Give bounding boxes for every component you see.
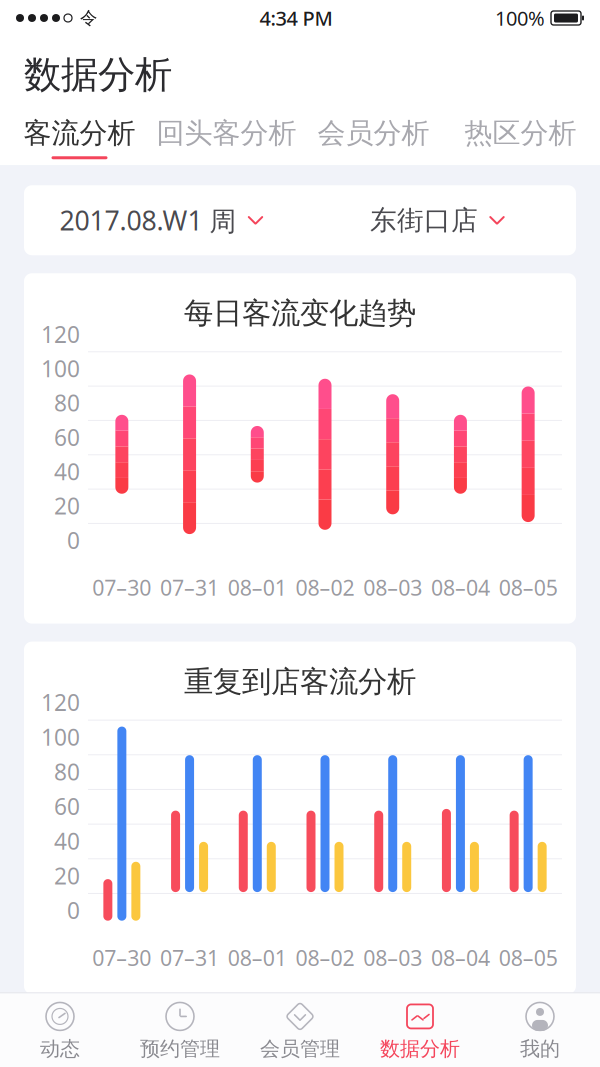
button[interactable]: 回头客分析 (153, 112, 300, 163)
staticText: 重复到店客流分析 (184, 664, 416, 700)
staticText: 120 (41, 687, 80, 717)
staticText: 预约管理 (140, 1036, 220, 1061)
staticText: 08–04 (431, 573, 490, 602)
button[interactable]: 数据分析 (360, 993, 480, 1067)
staticText: 08–03 (363, 573, 422, 602)
staticText: 会员管理 (260, 1036, 340, 1061)
staticText: 07–30 (92, 573, 151, 602)
staticText: 令 (80, 7, 97, 29)
staticText: 08–02 (295, 573, 354, 602)
staticText: 07–31 (160, 573, 219, 602)
staticText: 客流分析 (23, 116, 135, 150)
staticText: 07–31 (160, 944, 219, 972)
staticText: 100% (495, 5, 545, 31)
staticText: 60 (54, 791, 80, 821)
staticText: 08–05 (499, 944, 558, 972)
staticText: 热区分析 (464, 116, 576, 150)
staticText: 数据分析 (380, 1036, 460, 1061)
staticText: 08–03 (363, 944, 422, 972)
button[interactable]: 东街口店 (300, 190, 576, 251)
button[interactable]: 热区分析 (447, 112, 594, 163)
staticText: 08–04 (431, 944, 490, 972)
staticText: 40 (54, 456, 80, 486)
button[interactable]: 客流分析 (6, 112, 153, 163)
button[interactable]: 会员分析 (300, 112, 447, 163)
staticText: 80 (54, 388, 80, 418)
staticText: 每日客流变化趋势 (184, 295, 416, 331)
staticText: 我的 (520, 1036, 560, 1061)
staticText: 08–01 (228, 573, 287, 602)
staticText: 40 (54, 826, 80, 856)
button[interactable]: 我的 (480, 993, 600, 1067)
staticText: 08–05 (499, 573, 558, 602)
staticText: 2017.08.W1 周 (59, 202, 236, 238)
staticText: 20 (54, 491, 80, 521)
button[interactable]: 动态 (0, 993, 120, 1067)
staticText: 100 (41, 353, 80, 383)
staticText: 100 (41, 722, 80, 752)
staticText: 0 (67, 895, 80, 925)
staticText: 0 (67, 525, 80, 555)
button[interactable]: 预约管理 (120, 993, 240, 1067)
staticText: 动态 (40, 1036, 80, 1061)
staticText: 08–01 (228, 944, 287, 972)
staticText: 08–02 (295, 944, 354, 972)
staticText: 120 (41, 319, 80, 349)
button[interactable]: 2017.08.W1 周 (24, 188, 300, 252)
staticText: 60 (54, 422, 80, 452)
staticText: 会员分析 (317, 116, 429, 150)
staticText: 东街口店 (370, 204, 478, 237)
staticText: 80 (54, 757, 80, 787)
button[interactable]: 会员管理 (240, 993, 360, 1067)
staticText: 回头客分析 (156, 116, 296, 150)
staticText: 数据分析 (24, 52, 172, 98)
staticText: 07–30 (92, 944, 151, 972)
staticText: 4:34 PM (259, 5, 332, 31)
staticText: 20 (54, 861, 80, 891)
